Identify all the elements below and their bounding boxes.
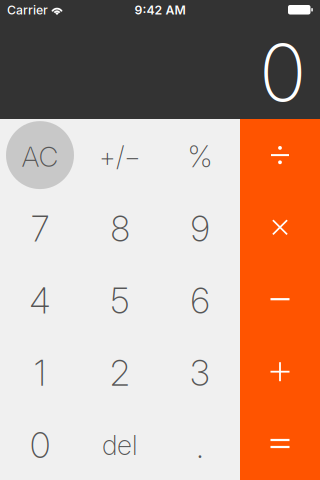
button[interactable]: +/− bbox=[80, 119, 160, 191]
button[interactable]: 8 bbox=[80, 191, 160, 263]
staticText: 0 bbox=[259, 25, 307, 120]
staticText: AC bbox=[21, 140, 58, 174]
button[interactable]: % bbox=[160, 119, 240, 191]
button[interactable]: 2 bbox=[80, 336, 160, 408]
button[interactable]: 3 bbox=[160, 336, 240, 408]
staticText: 5 bbox=[110, 280, 129, 322]
button[interactable]: Subtract bbox=[240, 263, 320, 336]
button[interactable]: AC bbox=[0, 119, 80, 191]
button[interactable]: 1 bbox=[0, 336, 80, 408]
staticText: % bbox=[187, 139, 212, 174]
staticText: 9:42 AM bbox=[134, 3, 185, 17]
button[interactable]: del bbox=[80, 408, 160, 480]
staticText: . bbox=[196, 424, 204, 466]
staticText: 9 bbox=[190, 208, 209, 250]
staticText: Carrier bbox=[7, 3, 48, 17]
staticText: 4 bbox=[29, 280, 50, 322]
button[interactable]: 7 bbox=[0, 191, 80, 263]
button[interactable]: Equals bbox=[240, 408, 320, 480]
button[interactable]: . bbox=[160, 408, 240, 480]
staticText: 0 bbox=[30, 424, 50, 466]
button[interactable]: Divide bbox=[240, 119, 320, 191]
staticText: +/− bbox=[99, 140, 141, 173]
staticText: del bbox=[102, 429, 138, 462]
button[interactable]: 5 bbox=[80, 263, 160, 336]
staticText: 6 bbox=[190, 280, 209, 322]
button[interactable]: Multiply bbox=[240, 191, 320, 263]
staticText: 8 bbox=[110, 208, 129, 250]
button[interactable]: 4 bbox=[0, 263, 80, 336]
staticText: 3 bbox=[190, 352, 210, 394]
button[interactable]: 0 bbox=[0, 408, 80, 480]
button[interactable]: 9 bbox=[160, 191, 240, 263]
button[interactable]: Add bbox=[240, 336, 320, 408]
staticText: 7 bbox=[31, 208, 49, 250]
staticText: 2 bbox=[110, 352, 130, 394]
staticText: 1 bbox=[34, 352, 46, 394]
button[interactable]: 6 bbox=[160, 263, 240, 336]
